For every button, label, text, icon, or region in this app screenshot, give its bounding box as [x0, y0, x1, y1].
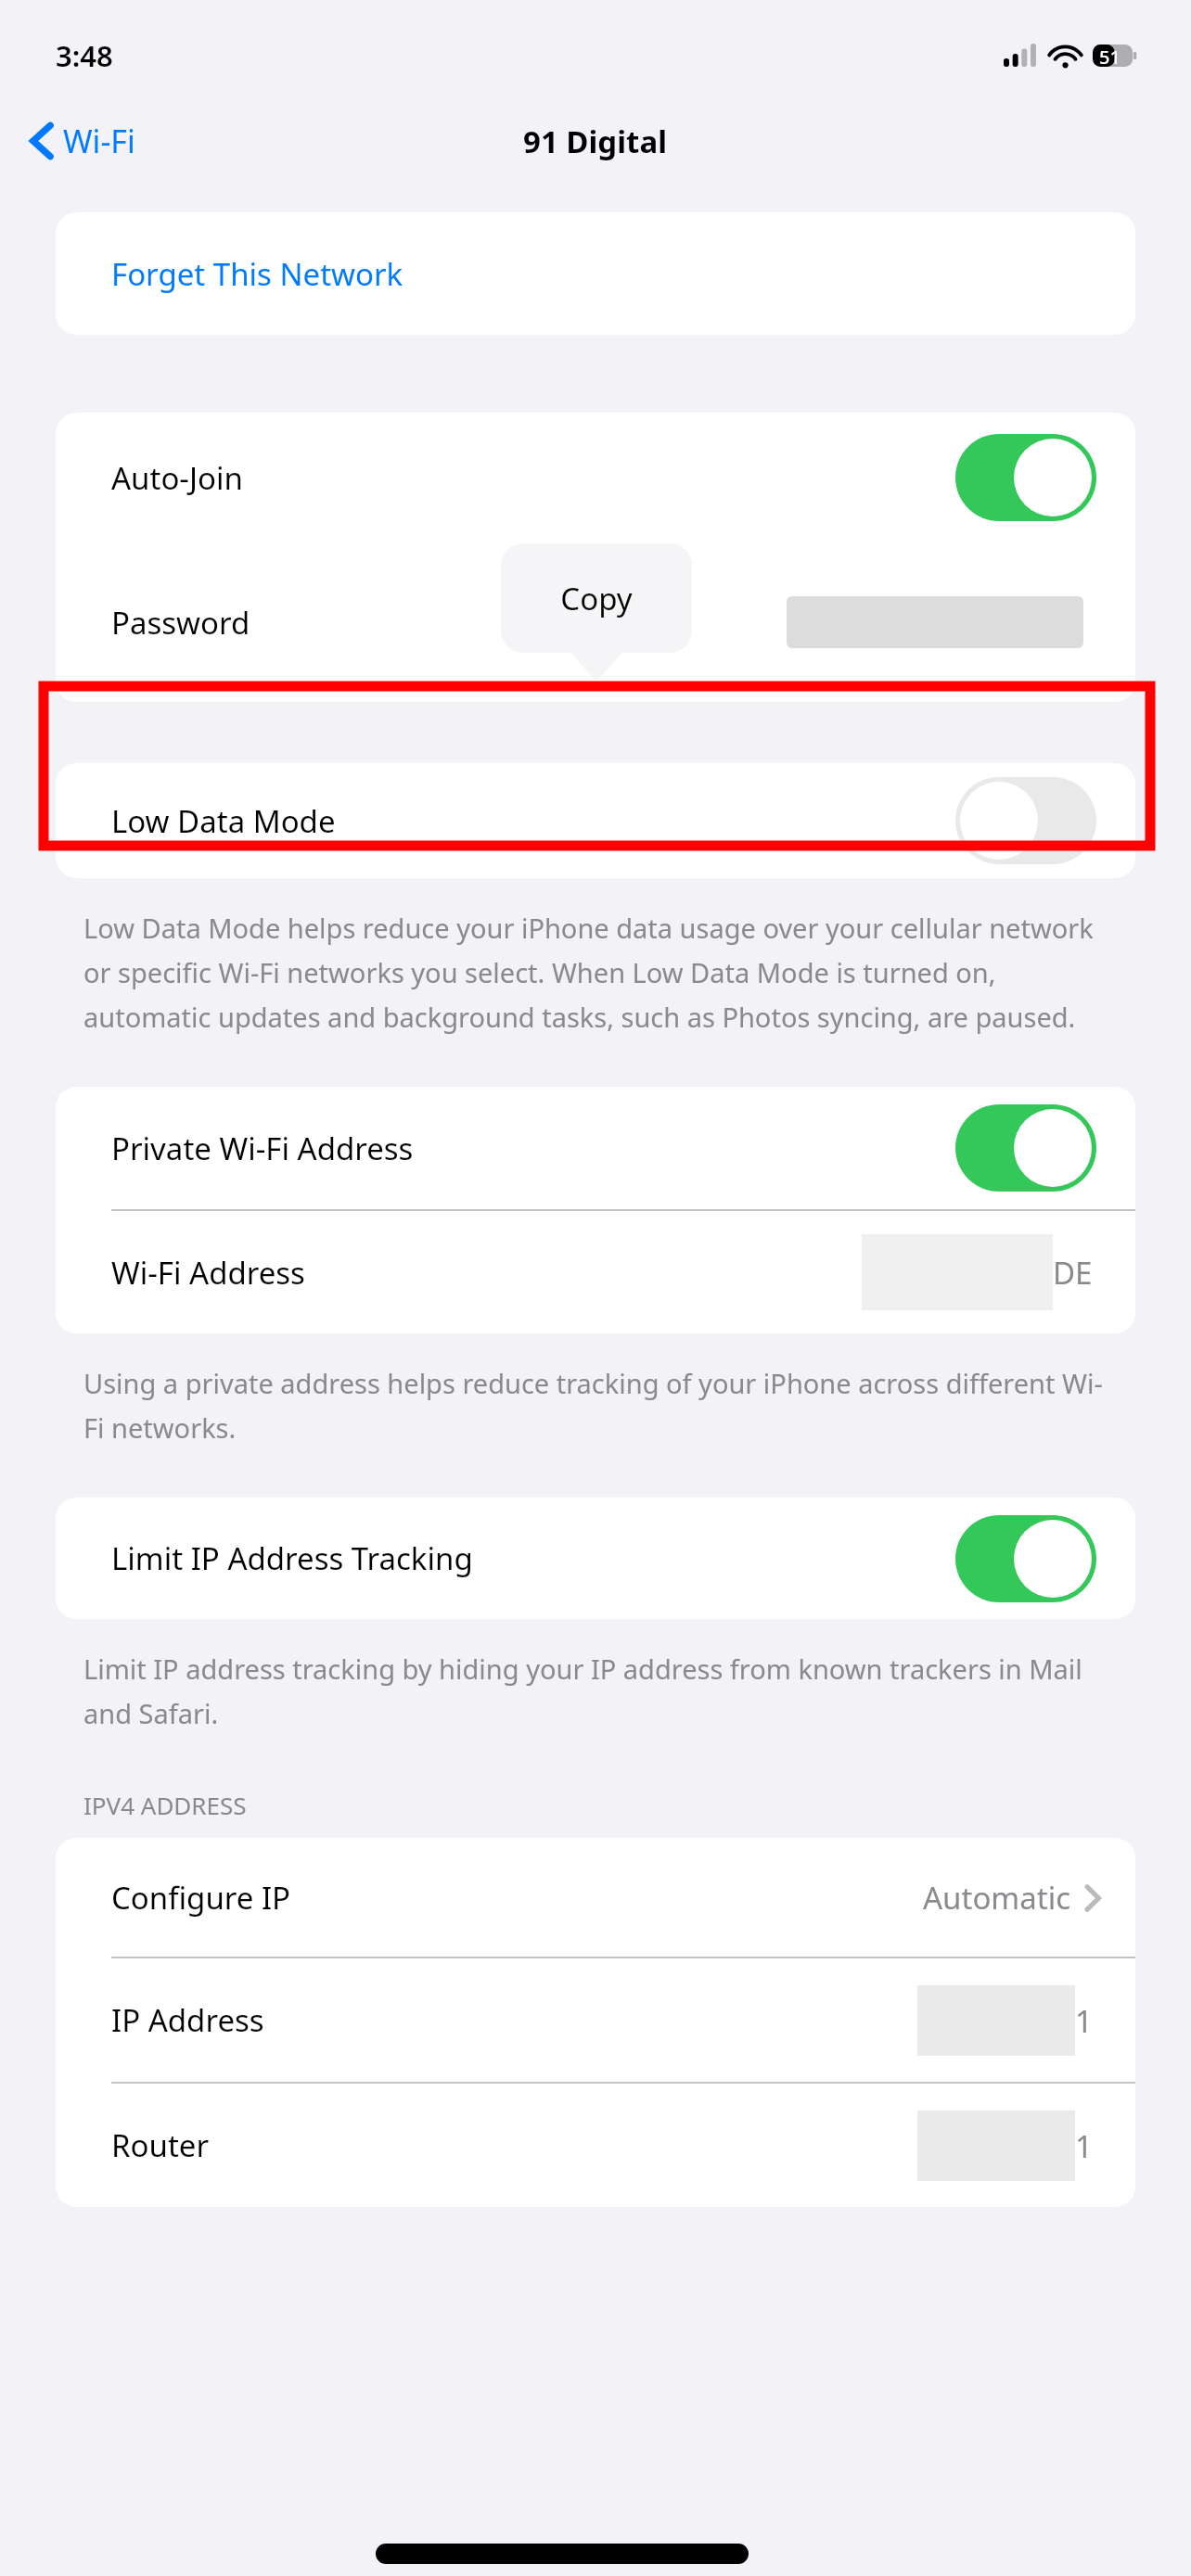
staticText: Wi-Fi Address [111, 1252, 305, 1294]
staticText: 51 [1099, 45, 1121, 67]
staticText: Auto-Join [111, 457, 243, 499]
staticText: IPV4 ADDRESS [83, 1789, 247, 1821]
staticText: 91 Digital [523, 121, 668, 162]
staticText: Using a private address helps reduce tra… [83, 1365, 1117, 1446]
staticText: Limit IP Address Tracking [111, 1537, 473, 1579]
button[interactable]: Low Data Mode [56, 763, 1135, 878]
staticText: Private Wi-Fi Address [111, 1128, 414, 1169]
button[interactable]: Toggle on [955, 1104, 1096, 1192]
staticText: Copy [560, 578, 633, 619]
button[interactable]: Wi-Fi Address [56, 1211, 1135, 1333]
staticText: Limit IP address tracking by hiding your… [83, 1651, 1117, 1731]
staticText: DE [1053, 1252, 1093, 1294]
staticText: Forget This Network [111, 253, 403, 295]
button[interactable]: Toggle off [955, 777, 1096, 864]
staticText: 3:48 [56, 36, 113, 75]
button[interactable]: Configure IP [56, 1838, 1135, 1957]
staticText: Password [111, 602, 250, 644]
staticText: Configure IP [111, 1877, 291, 1919]
button[interactable]: Private Wi-Fi Address [56, 1087, 1135, 1209]
button[interactable]: Wi-Fi [0, 112, 150, 170]
button[interactable]: IP Address [56, 1958, 1135, 2082]
staticText: Wi-Fi [63, 120, 135, 162]
staticText: Low Data Mode [111, 800, 336, 842]
staticText: 1 [1075, 2000, 1093, 2042]
staticText: Low Data Mode helps reduce your iPhone d… [83, 910, 1117, 1035]
button[interactable]: Toggle on [955, 1515, 1096, 1602]
button[interactable]: Auto-Join [56, 413, 1135, 542]
staticText: Router [111, 2124, 210, 2166]
button[interactable]: Forget This Network [56, 212, 1135, 335]
button[interactable]: Copy [501, 543, 692, 653]
staticText: Automatic [923, 1877, 1070, 1919]
staticText: 1 [1075, 2125, 1093, 2167]
button[interactable]: Password [56, 542, 1135, 702]
button[interactable]: Router [56, 2084, 1135, 2207]
button[interactable]: Toggle on [955, 434, 1096, 521]
button[interactable]: Limit IP Address Tracking [56, 1498, 1135, 1619]
staticText: IP Address [111, 1999, 264, 2041]
